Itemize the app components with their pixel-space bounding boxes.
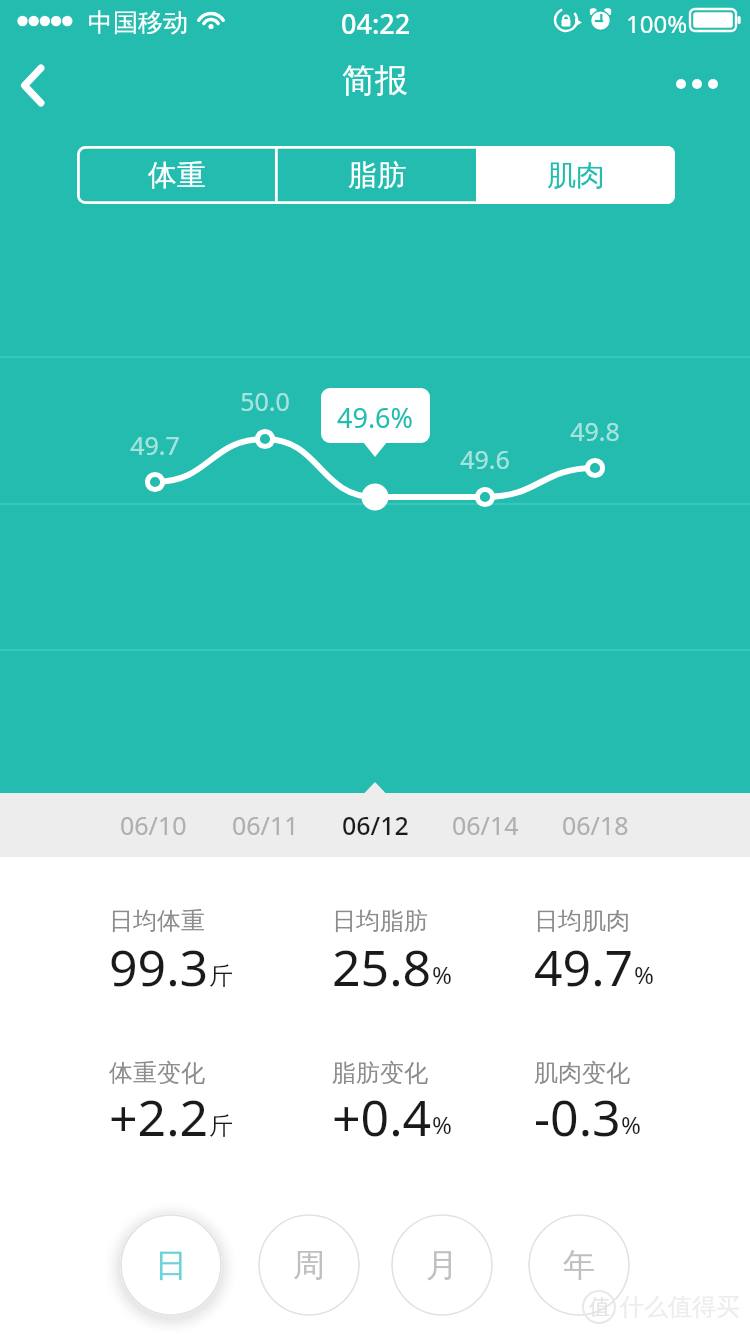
staticText: 什么值得买 <box>620 1292 740 1322</box>
staticText: 日均体重 <box>109 906 205 936</box>
staticText: 体重变化 <box>109 1058 205 1088</box>
staticText: 99.3 <box>109 933 209 1001</box>
button[interactable]: 体重 <box>77 146 277 204</box>
staticText: 体重 <box>148 157 206 194</box>
staticText: 06/14 <box>452 808 519 842</box>
staticText: 肌肉 <box>547 157 605 194</box>
staticText: 50.0 <box>240 384 290 418</box>
staticText: 年 <box>563 1245 595 1285</box>
staticText: 中国移动 <box>88 7 188 38</box>
staticText: +0.4 <box>332 1083 432 1151</box>
staticText: 25.8 <box>332 933 432 1001</box>
staticText: 04:22 <box>341 5 411 42</box>
button[interactable]: 06/10 <box>98 793 208 857</box>
staticText: 49.6% <box>337 399 414 436</box>
staticText: -0.3 <box>534 1083 621 1151</box>
staticText: 06/10 <box>120 808 187 842</box>
staticText: +2.2 <box>109 1083 209 1151</box>
staticText: 肌肉变化 <box>534 1058 630 1088</box>
staticText: 100% <box>626 7 688 40</box>
staticText: 06/11 <box>232 808 299 842</box>
staticText: 值 <box>589 1294 610 1320</box>
button[interactable]: 06/14 <box>430 793 540 857</box>
button[interactable]: More options <box>666 59 728 109</box>
staticText: % <box>432 1108 452 1141</box>
button[interactable]: 06/18 <box>540 793 650 857</box>
button[interactable]: 周 <box>258 1214 360 1316</box>
button[interactable]: 月 <box>391 1214 493 1316</box>
staticText: 49.6 <box>460 442 510 476</box>
staticText: 月 <box>426 1245 458 1285</box>
staticText: 斤 <box>209 1111 233 1141</box>
staticText: % <box>634 958 654 991</box>
button[interactable]: 06/12 <box>320 793 430 857</box>
staticText: 49.7 <box>534 933 634 1001</box>
staticText: 日均脂肪 <box>332 906 428 936</box>
staticText: 简报 <box>342 60 408 102</box>
staticText: 06/12 <box>342 808 409 842</box>
staticText: % <box>621 1108 641 1141</box>
staticText: 日均肌肉 <box>534 906 630 936</box>
staticText: 脂肪 <box>348 157 406 194</box>
button[interactable]: 06/11 <box>210 793 320 857</box>
staticText: 周 <box>293 1245 325 1285</box>
staticText: % <box>432 958 452 991</box>
staticText: 49.8 <box>570 414 620 448</box>
staticText: 49.7 <box>130 428 180 462</box>
staticText: 06/18 <box>562 808 629 842</box>
staticText: 斤 <box>209 961 233 991</box>
staticText: 日 <box>155 1245 187 1285</box>
button[interactable]: 脂肪 <box>277 146 476 204</box>
button[interactable]: Back <box>0 44 62 106</box>
staticText: 脂肪变化 <box>332 1058 428 1088</box>
button[interactable]: 年 <box>528 1214 630 1316</box>
button[interactable]: 肌肉 <box>476 146 675 204</box>
button[interactable]: 日 <box>120 1214 222 1316</box>
